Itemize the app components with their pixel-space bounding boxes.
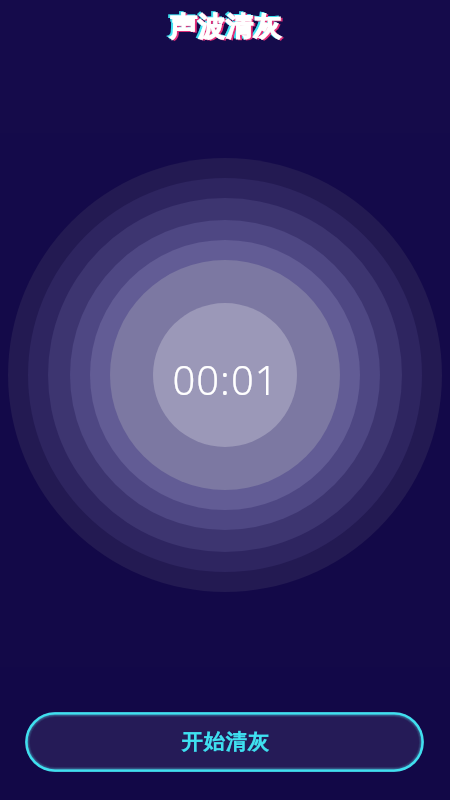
button[interactable]: Ripple timer xyxy=(153,303,297,447)
staticText: 声波清灰 xyxy=(171,11,283,45)
button[interactable]: 开始清灰 xyxy=(25,712,424,772)
staticText: 声波清灰 xyxy=(169,10,281,44)
staticText: 开始清灰 xyxy=(181,729,269,755)
staticText: 声波清灰 xyxy=(167,9,279,43)
staticText: 00:01 xyxy=(172,352,279,406)
